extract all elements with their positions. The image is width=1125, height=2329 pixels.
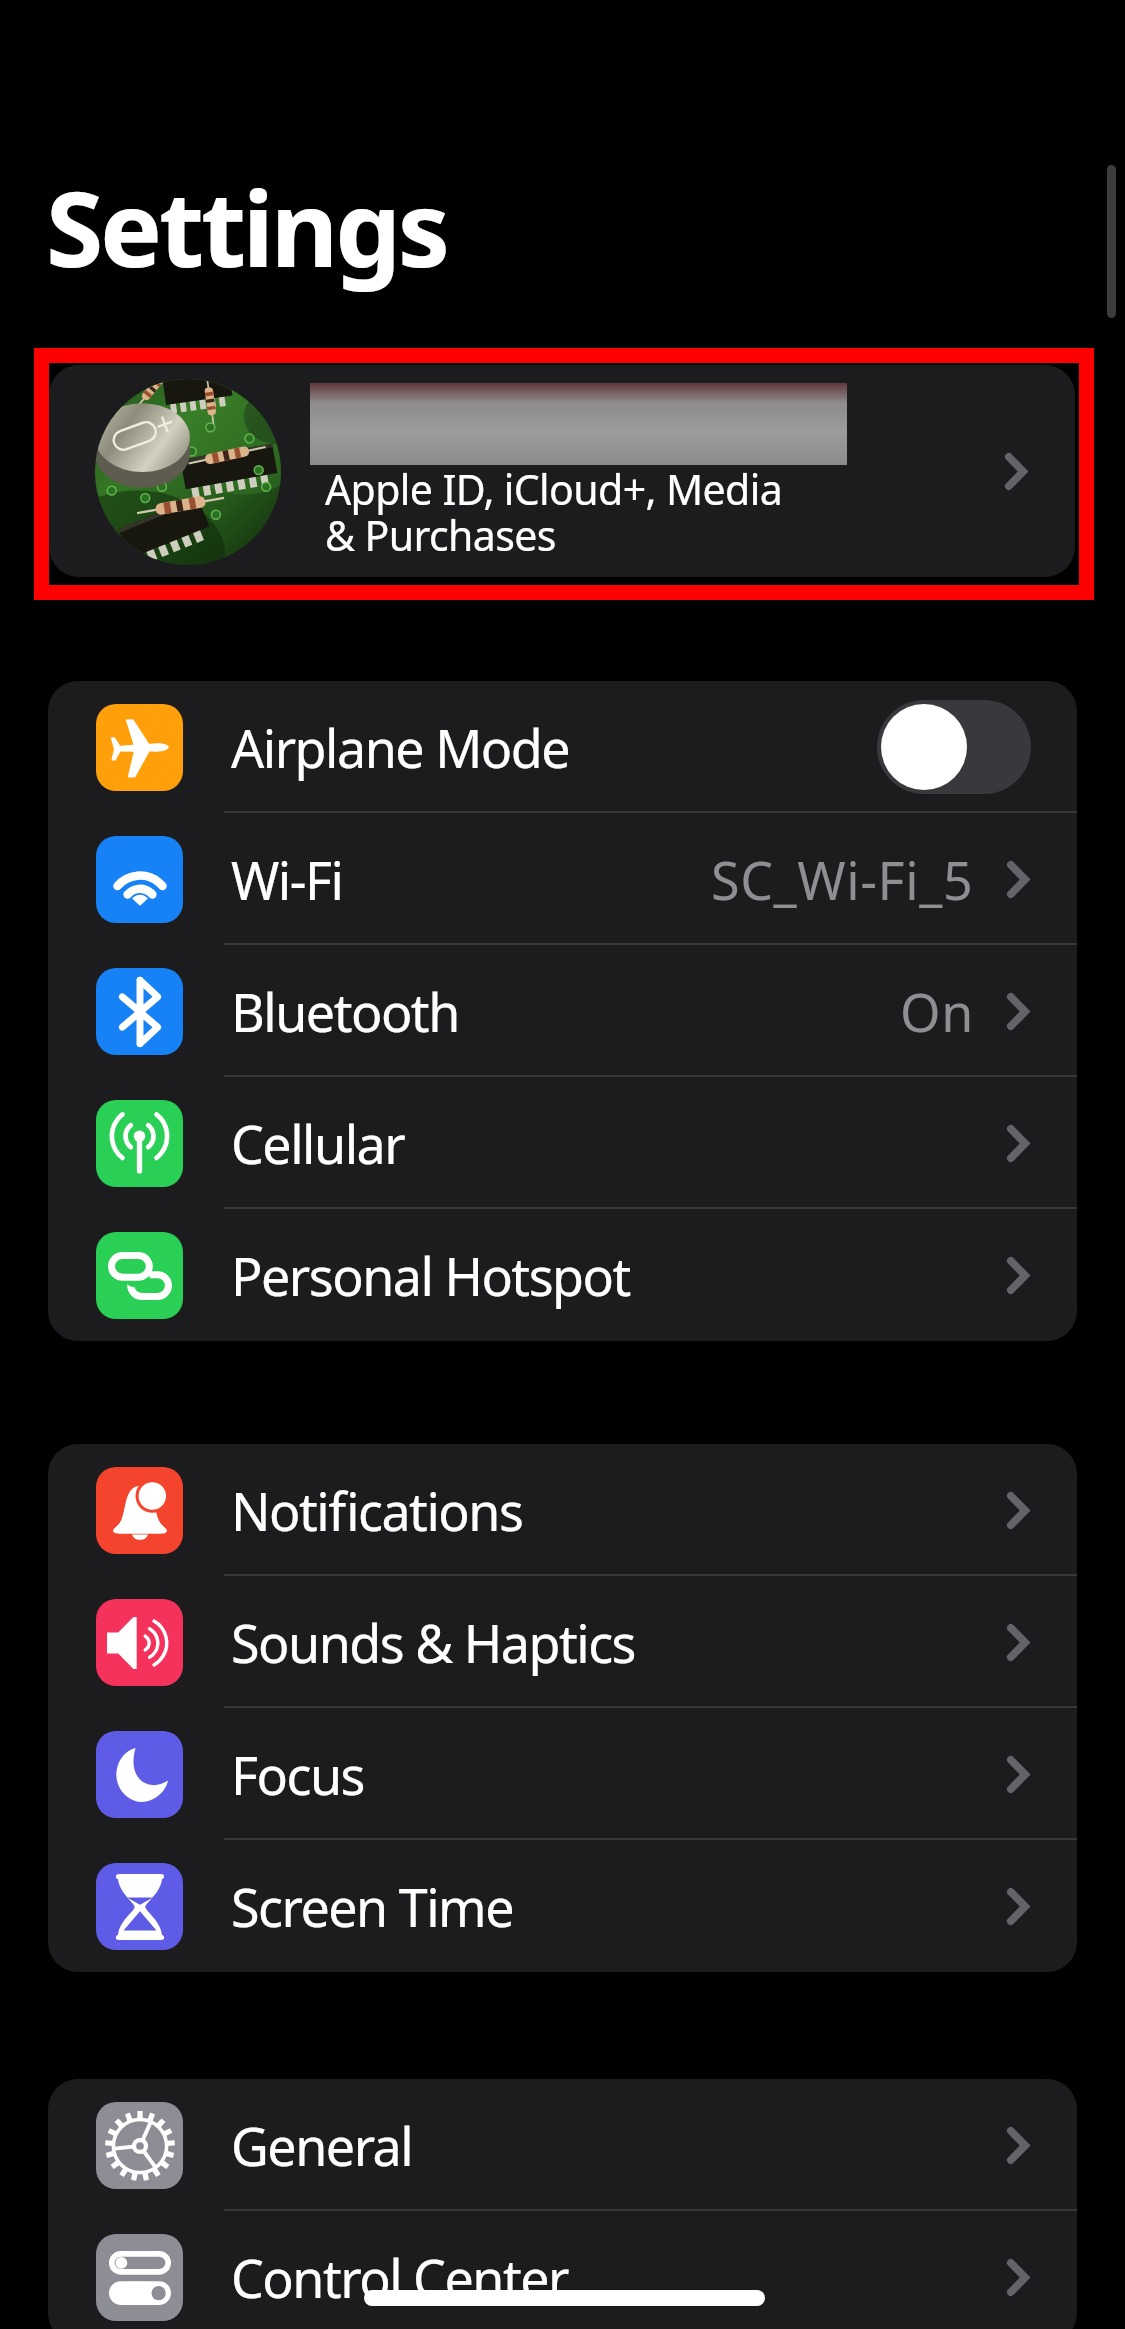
staticText: Screen Time <box>231 1871 514 1942</box>
staticText: Apple ID, iCloud+, Media & Purchases <box>325 461 783 563</box>
staticText: Sounds & Haptics <box>231 1607 636 1678</box>
button[interactable]: Airplane Mode toggle <box>877 700 1031 794</box>
button[interactable]: Notifications <box>48 1444 1077 1576</box>
button[interactable]: Personal Hotspot <box>48 1209 1077 1341</box>
staticText: Notifications <box>231 1475 523 1546</box>
staticText: Settings <box>46 156 447 298</box>
staticText: On <box>900 976 974 1047</box>
staticText: Bluetooth <box>231 976 459 1047</box>
staticText: General <box>231 2110 413 2181</box>
staticText: Wi-Fi <box>231 844 343 915</box>
staticText: Airplane Mode <box>231 712 570 783</box>
button[interactable]: General <box>48 2079 1077 2211</box>
staticText: Personal Hotspot <box>231 1240 630 1311</box>
staticText: Focus <box>231 1739 364 1810</box>
staticText: SC_Wi-Fi_5 <box>711 844 974 915</box>
staticText: Cellular <box>231 1108 405 1179</box>
button[interactable]: Bluetooth <box>48 945 1077 1077</box>
button[interactable]: Sounds & Haptics <box>48 1576 1077 1708</box>
button[interactable]: Wi-Fi <box>48 813 1077 945</box>
button[interactable]: Focus <box>48 1708 1077 1840</box>
button[interactable]: Apple ID, iCloud+, Media & Purchases <box>49 365 1075 577</box>
button[interactable]: Cellular <box>48 1077 1077 1209</box>
button[interactable]: Airplane Mode <box>48 681 1077 813</box>
button[interactable]: Control Center <box>48 2211 1077 2329</box>
staticText: Control Center <box>231 2242 568 2313</box>
button[interactable]: Screen Time <box>48 1840 1077 1972</box>
